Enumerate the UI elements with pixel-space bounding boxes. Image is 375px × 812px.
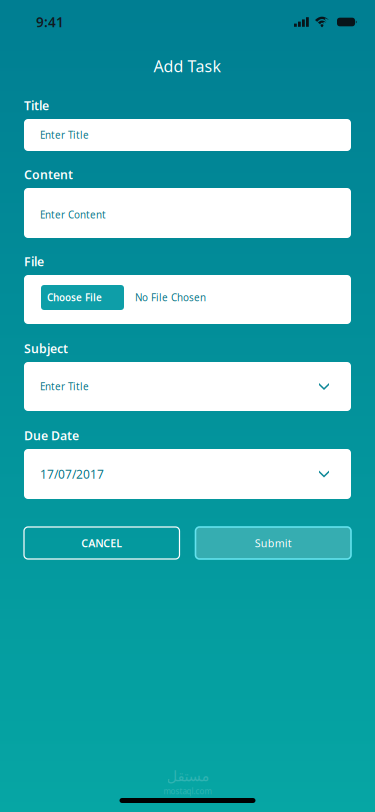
staticText: Choose File bbox=[47, 291, 102, 304]
button[interactable]: Submit bbox=[195, 527, 351, 559]
staticText: 17/07/2017 bbox=[40, 466, 104, 482]
staticText: Add Task bbox=[153, 55, 221, 77]
staticText: 9:41 bbox=[36, 13, 64, 31]
staticText: File bbox=[24, 253, 44, 270]
button[interactable]: Enter Title bbox=[24, 362, 351, 411]
staticText: Enter Title bbox=[40, 128, 89, 142]
button[interactable]: 17/07/2017 bbox=[24, 449, 351, 499]
staticText: mostaql.com bbox=[163, 786, 211, 796]
staticText: CANCEL bbox=[81, 536, 122, 550]
staticText: Due Date bbox=[24, 427, 79, 444]
staticText: Submit bbox=[255, 536, 292, 550]
button[interactable]: CANCEL bbox=[24, 527, 179, 559]
staticText: No File Chosen bbox=[135, 291, 206, 304]
staticText: Content bbox=[24, 166, 73, 183]
staticText: مستقل bbox=[166, 767, 209, 785]
staticText: Subject bbox=[24, 340, 68, 357]
staticText: Enter Content bbox=[40, 208, 106, 221]
button[interactable]: Choose File bbox=[41, 285, 124, 310]
staticText: Title bbox=[24, 97, 49, 114]
staticText: Enter Title bbox=[40, 380, 89, 393]
